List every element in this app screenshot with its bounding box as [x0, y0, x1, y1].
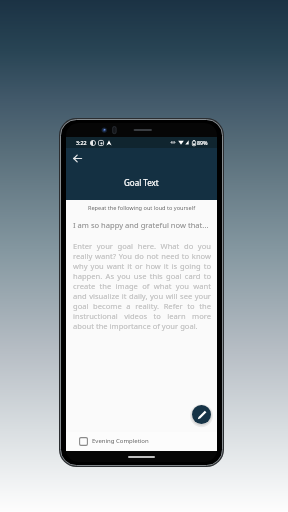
button[interactable]: Evening Completion	[66, 432, 217, 451]
staticText: Repeat the following out loud to yoursel…	[66, 204, 217, 212]
staticText: I am so happy and grateful now that...	[73, 220, 211, 230]
staticText: 89%	[197, 139, 208, 146]
button[interactable]: Back	[69, 150, 85, 166]
staticText: Goal Text	[124, 177, 159, 188]
staticText: 3:22	[76, 139, 87, 146]
staticText: Evening Completion	[92, 437, 149, 445]
button[interactable]: Edit goal	[192, 405, 211, 424]
staticText: Enter your goal here. What do you really…	[73, 241, 211, 331]
